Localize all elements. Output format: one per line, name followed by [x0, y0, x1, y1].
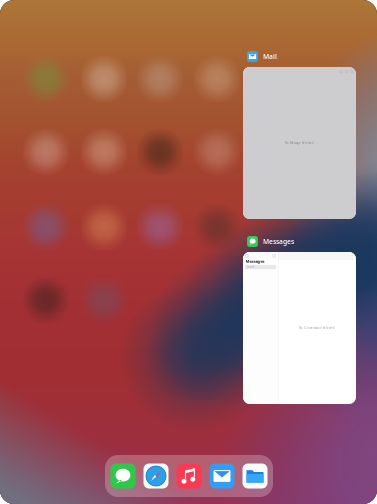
button[interactable]: Safari: [143, 463, 168, 488]
button[interactable]: Mail: [209, 463, 234, 488]
button[interactable]: Messages: [247, 235, 360, 248]
staticText: No Message Selected: [285, 141, 314, 145]
button[interactable]: Mail: [247, 50, 360, 63]
staticText: Mail: [263, 52, 277, 61]
button[interactable]: Music: [176, 463, 201, 488]
staticText: Messages: [245, 259, 264, 264]
button[interactable]: Messages: [110, 463, 135, 488]
button[interactable]: Files: [242, 463, 267, 488]
staticText: Search: [247, 265, 255, 269]
button[interactable]: No Conversation Selected: [243, 252, 356, 404]
button[interactable]: No Message Selected: [243, 67, 356, 219]
staticText: Messages: [263, 237, 294, 246]
staticText: No Conversation Selected: [299, 326, 335, 330]
staticText: No Message Selected: [305, 141, 334, 145]
